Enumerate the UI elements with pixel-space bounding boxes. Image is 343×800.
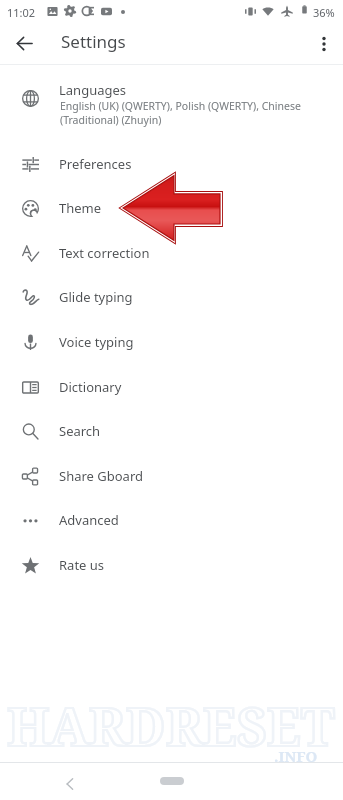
staticText: HARDRESET bbox=[7, 690, 335, 761]
button[interactable]: Glide typing bbox=[0, 275, 343, 320]
staticText: .INFO bbox=[274, 746, 318, 766]
button[interactable]: Home bbox=[160, 777, 184, 785]
staticText: Dictionary bbox=[59, 378, 122, 396]
staticText: Text correction bbox=[59, 244, 150, 262]
staticText: 11:02 bbox=[7, 5, 36, 20]
button[interactable]: Languages bbox=[0, 76, 343, 131]
button[interactable]: Back bbox=[59, 773, 81, 795]
button[interactable]: Voice typing bbox=[0, 320, 343, 365]
button[interactable]: Preferences bbox=[0, 142, 343, 187]
button[interactable]: Search bbox=[0, 409, 343, 454]
staticText: Preferences bbox=[59, 155, 132, 173]
button[interactable]: Share Gboard bbox=[0, 454, 343, 499]
button[interactable]: Text correction bbox=[0, 231, 343, 276]
staticText: Voice typing bbox=[59, 333, 134, 351]
button[interactable]: More options bbox=[306, 26, 342, 62]
staticText: 36% bbox=[313, 5, 335, 20]
staticText: Rate us bbox=[59, 556, 105, 574]
button[interactable]: Back bbox=[6, 25, 42, 61]
staticText: English (UK) (QWERTY), Polish (QWERTY), … bbox=[60, 99, 301, 127]
button[interactable]: Rate us bbox=[0, 543, 343, 588]
staticText: Advanced bbox=[59, 511, 119, 529]
staticText: Share Gboard bbox=[59, 467, 144, 485]
staticText: Languages bbox=[59, 81, 127, 99]
button[interactable]: Dictionary bbox=[0, 365, 343, 410]
staticText: Search bbox=[59, 422, 101, 440]
staticText: Settings bbox=[61, 30, 126, 53]
button[interactable]: Theme bbox=[0, 186, 343, 231]
staticText: Theme bbox=[59, 199, 102, 217]
staticText: Glide typing bbox=[59, 288, 133, 306]
button[interactable]: Advanced bbox=[0, 498, 343, 543]
